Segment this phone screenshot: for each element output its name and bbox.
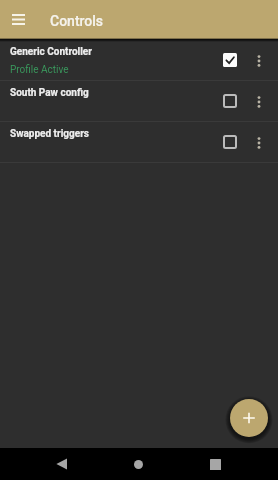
- button[interactable]: Enabled: [216, 46, 243, 73]
- button[interactable]: South Paw config: [0, 81, 278, 122]
- staticText: Swapped triggers: [10, 128, 89, 140]
- button[interactable]: Disabled: [216, 128, 243, 155]
- button[interactable]: Home: [122, 448, 155, 480]
- button[interactable]: More options: [246, 130, 272, 156]
- staticText: Controls: [50, 13, 104, 29]
- button[interactable]: Swapped triggers: [0, 122, 278, 163]
- staticText: South Paw config: [10, 87, 89, 99]
- button[interactable]: Recent apps: [199, 448, 232, 480]
- staticText: Generic Controller: [10, 46, 92, 58]
- button[interactable]: Back: [45, 448, 78, 480]
- button[interactable]: Generic Controller: [0, 40, 278, 81]
- button[interactable]: More options: [246, 48, 272, 74]
- button[interactable]: Open navigation menu: [5, 6, 32, 33]
- staticText: Profile Active: [10, 64, 69, 76]
- button[interactable]: Add profile: [230, 399, 268, 437]
- button[interactable]: Disabled: [216, 87, 243, 114]
- button[interactable]: More options: [246, 89, 272, 115]
